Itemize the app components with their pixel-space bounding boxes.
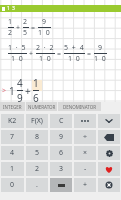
staticText: 1 0 <box>39 54 52 64</box>
button[interactable]: DENOMINATOR <box>58 102 101 111</box>
staticText: > <box>2 86 7 96</box>
staticText: 2 <box>35 164 40 174</box>
staticText: 9 <box>59 132 64 142</box>
button[interactable]: Collapse <box>98 114 120 128</box>
staticText: 4 <box>17 76 23 90</box>
staticText: ÷ <box>83 132 88 142</box>
button[interactable]: 0 <box>1 178 24 192</box>
button[interactable]: × <box>74 146 96 160</box>
staticText: 9 <box>17 91 23 105</box>
button[interactable]: 7 <box>1 130 24 144</box>
staticText: 7 <box>10 132 15 142</box>
staticText: = <box>87 49 92 59</box>
staticText: 1 0 <box>11 54 24 64</box>
other: Collapse <box>104 118 114 124</box>
staticText: 0 <box>10 180 15 190</box>
staticText: 3 <box>59 164 64 174</box>
staticText: × <box>83 148 88 158</box>
button[interactable]: Close <box>98 178 120 192</box>
staticText: + <box>29 49 34 59</box>
button[interactable]: Backspace <box>98 130 120 144</box>
staticText: NUMERATOR <box>28 104 56 110</box>
button[interactable]: 3 <box>50 162 72 176</box>
button[interactable]: NUMERATOR <box>26 102 57 111</box>
button[interactable]: 2 <box>26 162 48 176</box>
staticText: . <box>36 180 38 190</box>
staticText: 1 <box>7 5 10 12</box>
staticText: K2 <box>8 116 17 126</box>
button[interactable]: Hide keyboard <box>50 178 72 192</box>
staticText: - <box>84 164 87 174</box>
staticText: 5 + 4 <box>64 43 85 53</box>
button[interactable]: 8 <box>26 130 48 144</box>
button[interactable]: K2 <box>1 114 24 128</box>
staticText: + <box>83 180 88 190</box>
staticText: C <box>59 116 64 126</box>
staticText: 4 <box>10 148 15 158</box>
button[interactable]: 4 <box>1 146 24 160</box>
button[interactable]: ÷ <box>74 130 96 144</box>
button[interactable]: . <box>26 178 48 192</box>
button[interactable]: + <box>74 178 96 192</box>
other: Close <box>105 181 113 189</box>
staticText: + <box>16 23 21 33</box>
button[interactable]: 6 <box>50 146 72 160</box>
staticText: 9 <box>42 17 48 27</box>
staticText: + <box>25 84 31 98</box>
staticText: 2 · 2 <box>36 43 55 53</box>
other: Backspace <box>104 134 114 141</box>
button[interactable]: 5 <box>26 146 48 160</box>
staticText: 1 <box>10 164 15 174</box>
staticText: = <box>31 23 36 33</box>
staticText: 6 <box>33 91 39 105</box>
staticText: 1 0 <box>38 28 51 38</box>
staticText: 1 · 5 <box>8 43 27 53</box>
other: Favourite <box>105 166 113 173</box>
staticText: 9 <box>98 43 104 53</box>
button[interactable]: INTEGER <box>0 102 25 111</box>
staticText: 2 <box>8 28 14 38</box>
staticText: 3 <box>12 5 15 12</box>
button[interactable]: Settings <box>98 146 120 160</box>
staticText: DENOMINATOR <box>63 104 97 110</box>
button[interactable]: - <box>74 162 96 176</box>
staticText: = <box>57 49 62 59</box>
other: Settings <box>106 150 113 157</box>
staticText: INTEGER <box>3 104 22 110</box>
staticText: 1 <box>9 84 15 98</box>
other: More <box>80 118 90 124</box>
staticText: 1 0 <box>68 54 81 64</box>
staticText: 1 <box>8 17 14 27</box>
other: Hide keyboard <box>58 183 65 188</box>
staticText: 2 <box>23 17 29 27</box>
staticText: 6 <box>59 148 64 158</box>
button[interactable]: 9 <box>50 130 72 144</box>
staticText: 5 <box>23 28 29 38</box>
staticText: 1 <box>33 76 39 90</box>
staticText: 8 <box>35 132 40 142</box>
button[interactable]: Favourite <box>98 162 120 176</box>
staticText: 1 0 <box>94 54 107 64</box>
staticText: 5 <box>35 148 40 158</box>
button[interactable]: F(X) <box>26 114 48 128</box>
staticText: F(X) <box>31 116 43 126</box>
button[interactable]: 1 <box>1 162 24 176</box>
button[interactable]: More <box>74 114 96 128</box>
button[interactable]: C <box>50 114 72 128</box>
